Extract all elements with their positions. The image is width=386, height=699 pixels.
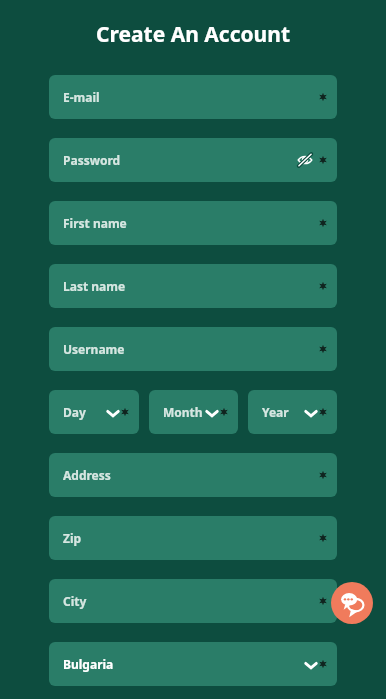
button[interactable]: City (49, 579, 337, 623)
staticText: Create An Account (0, 20, 386, 49)
button[interactable]: Day (49, 390, 139, 434)
button[interactable]: First name (49, 201, 337, 245)
button[interactable]: Year (248, 390, 337, 434)
staticText: Month (163, 404, 203, 420)
staticText: Year (262, 404, 289, 420)
button[interactable]: Zip (49, 516, 337, 560)
staticText: City (63, 593, 87, 609)
button[interactable]: Address (49, 453, 337, 497)
staticText: Zip (63, 530, 82, 546)
button[interactable]: Bulgaria (49, 642, 337, 686)
staticText: Last name (63, 278, 126, 294)
staticText: Address (63, 467, 111, 483)
staticText: Username (63, 341, 125, 357)
staticText: E-mail (63, 89, 100, 105)
staticText: Bulgaria (63, 656, 114, 672)
button[interactable]: E-mail (49, 75, 337, 119)
button[interactable]: Toggle password visibility (295, 152, 315, 168)
staticText: Day (63, 404, 86, 420)
staticText: First name (63, 215, 127, 231)
button[interactable]: Month (149, 390, 238, 434)
button[interactable]: Chat support (331, 582, 373, 624)
button[interactable]: Username (49, 327, 337, 371)
button[interactable]: Last name (49, 264, 337, 308)
staticText: Password (63, 152, 121, 168)
button[interactable]: Password (49, 138, 337, 182)
